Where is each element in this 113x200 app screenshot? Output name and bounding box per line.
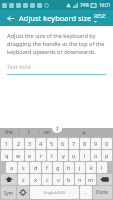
- button[interactable]: c: [42, 174, 52, 185]
- staticText: j: [79, 164, 81, 171]
- button[interactable]: s: [18, 162, 29, 173]
- button[interactable]: d: [30, 162, 41, 173]
- staticText: 9: [94, 140, 98, 147]
- staticText: d: [34, 164, 38, 171]
- staticText: 8: [83, 140, 87, 147]
- staticText: 74%: [80, 2, 89, 8]
- staticText: on: [44, 129, 51, 136]
- staticText: p: [105, 152, 109, 159]
- button[interactable]: f: [42, 162, 52, 173]
- staticText: e: [28, 152, 32, 159]
- staticText: RESET: [94, 13, 107, 23]
- button[interactable]: h: [64, 162, 74, 173]
- button[interactable]: e: [25, 150, 35, 161]
- staticText: s: [22, 164, 25, 171]
- button[interactable]: Backspace: [97, 174, 112, 185]
- button[interactable]: Resize keyboard handle: [52, 123, 62, 133]
- button[interactable]: k: [86, 162, 96, 173]
- button[interactable]: 7: [69, 138, 79, 149]
- button[interactable]: 3: [25, 138, 35, 149]
- staticText: k: [90, 164, 93, 171]
- staticText: Adjust keyboard size: [19, 13, 92, 23]
- staticText: English(US): [44, 190, 66, 195]
- staticText: 4: [39, 140, 43, 147]
- staticText: r: [40, 152, 43, 159]
- staticText: Done: [96, 189, 109, 196]
- button[interactable]: g: [53, 162, 63, 173]
- button[interactable]: t: [47, 150, 57, 161]
- staticText: 7: [72, 140, 76, 147]
- button[interactable]: 4: [36, 138, 46, 149]
- button[interactable]: the: [0, 128, 18, 137]
- button[interactable]: More suggestions: [55, 128, 113, 137]
- button[interactable]: 8: [80, 138, 90, 149]
- button[interactable]: Keyboard settings: [17, 186, 29, 199]
- button[interactable]: n: [75, 174, 85, 185]
- staticText: o: [94, 152, 98, 159]
- button[interactable]: y: [58, 150, 68, 161]
- staticText: Adjust the size of the keyboard by dragg…: [7, 32, 106, 56]
- button[interactable]: 1: [1, 138, 12, 149]
- button[interactable]: .: [80, 186, 92, 199]
- button[interactable]: Done: [93, 186, 112, 199]
- staticText: 6: [61, 140, 65, 147]
- staticText: a: [10, 164, 14, 171]
- button[interactable]: RESET: [92, 10, 109, 26]
- staticText: f: [46, 164, 48, 171]
- button[interactable]: u: [69, 150, 79, 161]
- button[interactable]: 0: [102, 138, 112, 149]
- button[interactable]: on: [39, 128, 55, 137]
- staticText: 16:01: [99, 2, 111, 8]
- button[interactable]: i: [80, 150, 90, 161]
- staticText: z: [22, 176, 25, 183]
- staticText: n: [78, 176, 82, 183]
- staticText: Text field: [7, 63, 31, 71]
- button[interactable]: I: [19, 128, 38, 137]
- staticText: q: [5, 152, 9, 159]
- staticText: y: [62, 152, 65, 159]
- button[interactable]: z: [18, 174, 29, 185]
- button[interactable]: 9: [91, 138, 101, 149]
- staticText: c: [46, 176, 49, 183]
- staticText: t: [51, 152, 53, 159]
- button[interactable]: 5: [47, 138, 57, 149]
- button[interactable]: x: [30, 174, 41, 185]
- staticText: .: [85, 189, 87, 196]
- staticText: v: [57, 176, 60, 183]
- button[interactable]: l: [97, 162, 107, 173]
- staticText: b: [67, 176, 71, 183]
- button[interactable]: Navigate up: [4, 12, 16, 24]
- button[interactable]: b: [64, 174, 74, 185]
- staticText: l: [101, 164, 103, 171]
- button[interactable]: o: [91, 150, 101, 161]
- button[interactable]: a: [6, 162, 17, 173]
- button[interactable]: 2: [13, 138, 24, 149]
- button[interactable]: Shift: [1, 174, 17, 185]
- staticText: m: [88, 176, 94, 183]
- button[interactable]: q: [1, 150, 12, 161]
- staticText: 3: [28, 140, 32, 147]
- button[interactable]: English(US): [30, 186, 79, 199]
- button[interactable]: j: [75, 162, 85, 173]
- button[interactable]: p: [102, 150, 112, 161]
- button[interactable]: 6: [58, 138, 68, 149]
- staticText: 0: [105, 140, 109, 147]
- staticText: x: [34, 176, 37, 183]
- button[interactable]: w: [13, 150, 24, 161]
- button[interactable]: v: [53, 174, 63, 185]
- staticText: 2: [17, 140, 21, 147]
- staticText: u: [72, 152, 76, 159]
- button[interactable]: Sym: [1, 186, 16, 199]
- staticText: I: [28, 129, 30, 136]
- staticText: h: [67, 164, 71, 171]
- button[interactable]: m: [86, 174, 96, 185]
- staticText: w: [16, 152, 21, 159]
- staticText: the: [5, 129, 13, 136]
- button[interactable]: r: [36, 150, 46, 161]
- staticText: 5: [50, 140, 54, 147]
- staticText: i: [84, 152, 86, 159]
- staticText: 1: [5, 140, 9, 147]
- staticText: Sym: [4, 190, 13, 196]
- staticText: g: [56, 164, 60, 171]
